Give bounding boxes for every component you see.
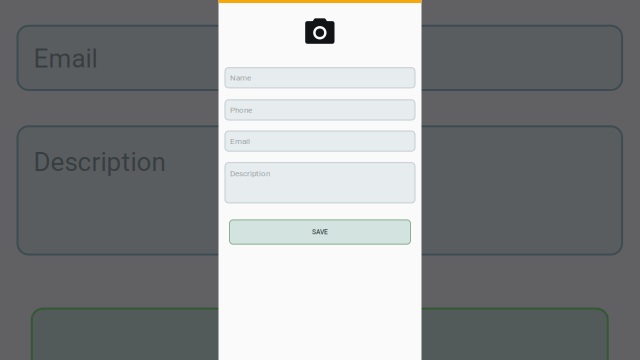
staticText: Email (33, 43, 97, 74)
staticText: Description (230, 169, 270, 178)
staticText: Name (230, 73, 251, 83)
button[interactable]: Add photo (299, 12, 340, 50)
button[interactable]: Email (225, 131, 415, 151)
button[interactable]: SAVE (229, 220, 410, 244)
staticText: Email (230, 136, 250, 146)
staticText: Phone (230, 105, 252, 115)
button[interactable]: Description (225, 163, 415, 203)
staticText: Description (33, 147, 165, 177)
staticText: SAVE (312, 228, 328, 236)
button[interactable]: Phone (225, 100, 415, 120)
button[interactable]: Name (225, 68, 415, 88)
